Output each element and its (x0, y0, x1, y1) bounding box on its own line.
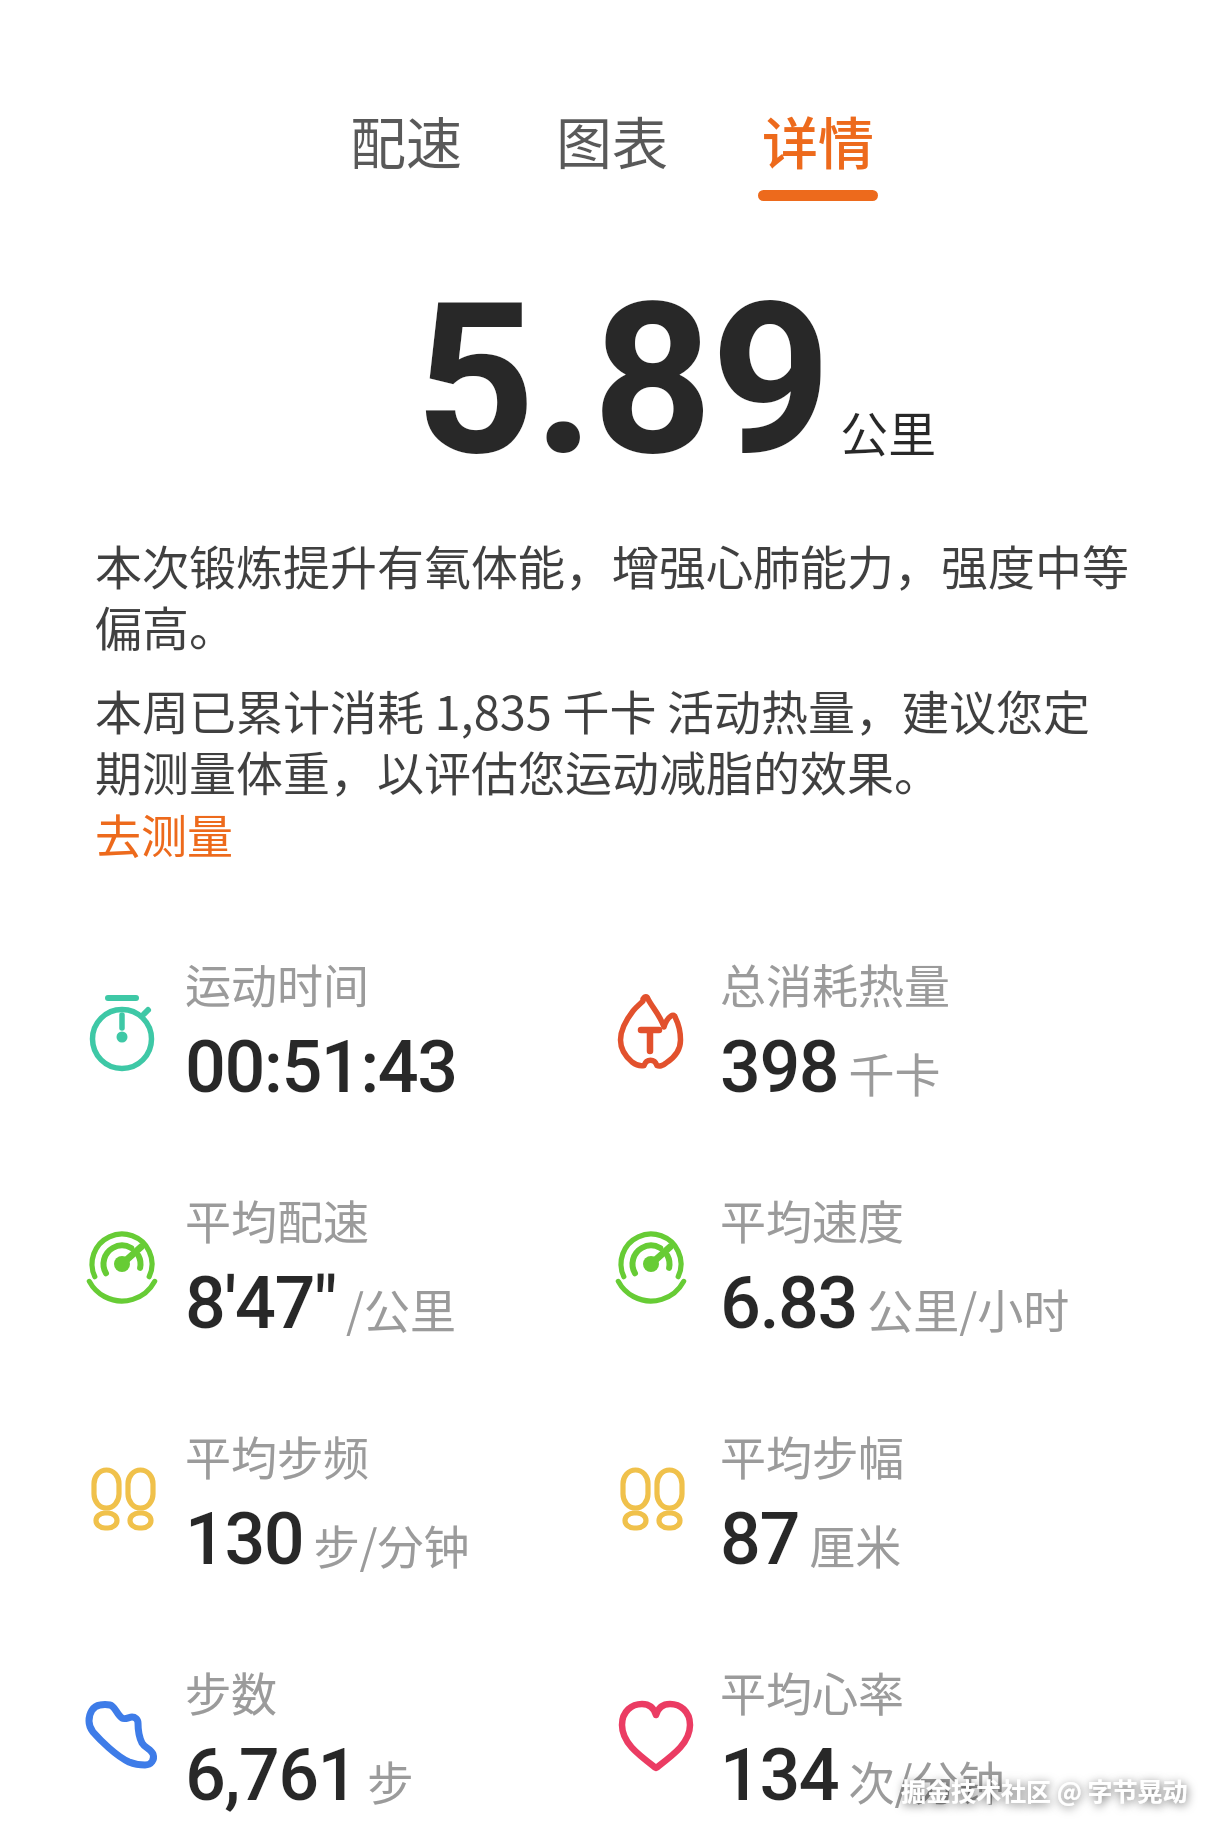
staticText: 配速 (350, 99, 462, 180)
staticText: 6.83 公里/小时 (720, 1261, 1070, 1345)
staticText: 本周已累计消耗 1,835 千卡 活动热量，建议您定 期测量体重，以评估您运动减… (95, 675, 1195, 804)
staticText: 134 次/分钟 (720, 1733, 1005, 1817)
button[interactable]: 详情 (758, 99, 878, 201)
button[interactable]: 图表 (552, 99, 672, 201)
staticText: 图表 (556, 99, 668, 180)
staticText: 本次锻炼提升有氧体能，增强心肺能力，强度中等 偏高。 (95, 530, 1195, 659)
staticText: 6,761 步 (185, 1733, 414, 1817)
staticText: 详情 (762, 99, 874, 180)
staticText: 总消耗热量 (720, 950, 950, 1017)
staticText: 掘金技术社区 @ 字节晃动 (901, 1772, 1188, 1808)
staticText: 87 厘米 (720, 1497, 902, 1581)
staticText: 8'47" /公里 (185, 1261, 457, 1345)
staticText: 平均心率 (720, 1658, 904, 1725)
button[interactable]: 配速 (346, 99, 466, 201)
staticText: 步数 (185, 1658, 277, 1725)
staticText: 运动时间 (185, 950, 369, 1017)
staticText: 平均步幅 (720, 1422, 904, 1489)
staticText: 5.89 公里 (415, 257, 937, 503)
button[interactable]: 去测量 (95, 800, 233, 867)
staticText: 平均速度 (720, 1186, 904, 1253)
staticText: 398 千卡 (720, 1025, 941, 1109)
staticText: 00:51:43 (185, 1025, 457, 1109)
staticText: 平均配速 (185, 1186, 369, 1253)
staticText: 平均步频 (185, 1422, 369, 1489)
staticText: 130 步/分钟 (185, 1497, 470, 1581)
